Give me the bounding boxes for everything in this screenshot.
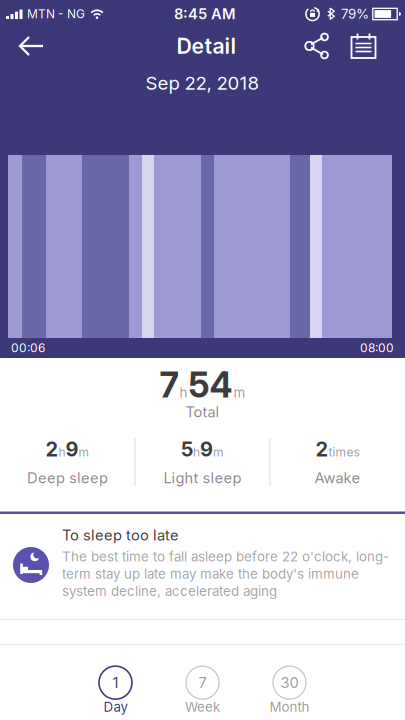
- staticText: 2: [45, 438, 58, 461]
- staticText: Sep 22, 2018: [145, 72, 259, 94]
- staticText: 7: [198, 674, 206, 691]
- staticText: 30: [280, 674, 298, 691]
- staticText: h: [193, 445, 200, 459]
- staticText: 9: [200, 438, 213, 461]
- staticText: Light sleep: [163, 469, 241, 486]
- staticText: 1: [112, 674, 118, 691]
- button[interactable]: Share: [304, 32, 330, 59]
- staticText: To sleep too late: [62, 526, 179, 544]
- staticText: 7: [159, 365, 178, 405]
- staticText: The best time to fall asleep before 22 o…: [62, 549, 389, 599]
- staticText: MTN - NG: [27, 7, 85, 21]
- staticText: Deep sleep: [27, 469, 108, 486]
- staticText: 79%: [341, 6, 369, 22]
- staticText: 8:45 AM: [174, 5, 236, 23]
- staticText: h: [179, 385, 187, 401]
- staticText: times: [328, 445, 359, 459]
- staticText: m: [78, 445, 89, 459]
- button[interactable]: 1: [86, 666, 144, 715]
- staticText: 00:06: [11, 341, 45, 355]
- staticText: 54: [188, 365, 232, 405]
- staticText: Awake: [314, 469, 360, 486]
- staticText: Detail: [176, 33, 236, 59]
- button[interactable]: 30: [260, 666, 318, 715]
- button[interactable]: 7: [173, 666, 231, 715]
- staticText: 2: [315, 438, 328, 461]
- button[interactable]: Back: [0, 36, 44, 56]
- staticText: Month: [269, 699, 309, 715]
- staticText: m: [213, 445, 224, 459]
- staticText: h: [58, 445, 65, 459]
- staticText: Week: [185, 699, 220, 715]
- staticText: Total: [185, 403, 219, 421]
- button[interactable]: Calendar: [330, 32, 405, 59]
- staticText: m: [233, 385, 245, 401]
- staticText: 9: [65, 438, 78, 461]
- staticText: 5: [181, 438, 193, 461]
- staticText: Day: [103, 699, 127, 715]
- staticText: 08:00: [360, 341, 394, 355]
